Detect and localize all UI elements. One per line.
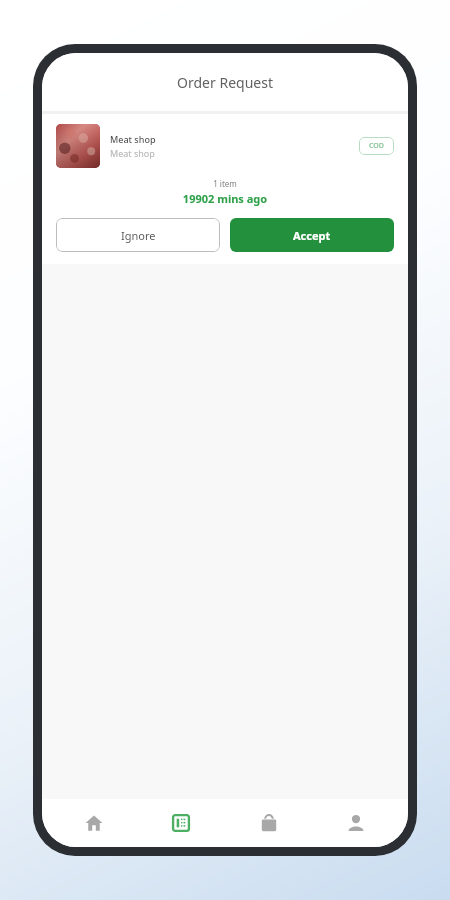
button[interactable]: Ignore [56,218,220,252]
staticText: 19902 mins ago [56,191,394,206]
staticText: Accept [293,228,331,243]
button[interactable]: Shop [234,799,304,847]
staticText: Order Request [177,73,273,92]
staticText: Meat shop [110,147,155,159]
staticText: Meat shop [110,133,156,145]
button[interactable]: Profile [321,799,391,847]
staticText: Ignore [121,228,156,243]
staticText: 1 item [56,178,394,189]
button[interactable]: Accept [230,218,394,252]
button[interactable]: COD [359,137,394,155]
button[interactable]: Orders [146,799,216,847]
button[interactable]: Home [59,799,129,847]
staticText: COD [369,141,384,151]
